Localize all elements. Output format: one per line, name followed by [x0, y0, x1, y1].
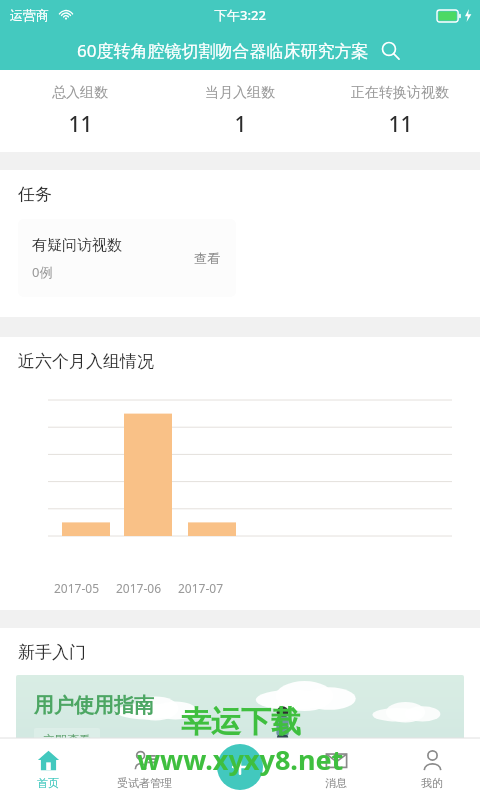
button[interactable]: 首页 [0, 738, 96, 800]
button[interactable]: Search [377, 37, 403, 63]
staticText: 运营商 [10, 7, 49, 23]
staticText: 2017-05 [54, 580, 100, 596]
staticText: 新手入门 [18, 642, 86, 663]
button[interactable]: 立即查看 [43, 732, 91, 747]
staticText: www.xyxy8.net [137, 741, 344, 778]
staticText: 总入组数 [52, 84, 108, 102]
staticText: 1 [234, 110, 247, 139]
button[interactable]: 当月入组数 [160, 84, 320, 139]
staticText: 下午3:22 [214, 6, 266, 24]
staticText: 2017-06 [116, 580, 162, 596]
staticText: 11 [388, 110, 413, 139]
button[interactable]: 有疑问访视数 [18, 219, 236, 297]
staticText: 用户使用指南 [34, 693, 154, 718]
staticText: 消息 [325, 776, 347, 790]
staticText: 11 [68, 110, 93, 139]
staticText: 0例 [32, 263, 53, 281]
staticText: 正在转换访视数 [351, 84, 449, 102]
button[interactable]: 我的 [384, 738, 480, 800]
staticText: 有疑问访视数 [32, 236, 122, 255]
staticText: 立即查看 [43, 732, 91, 747]
button[interactable]: 受试者管理 [96, 738, 192, 800]
staticText: 幸运下载 [181, 703, 301, 741]
staticText: 受试者管理 [117, 776, 172, 790]
staticText: 首页 [37, 776, 59, 790]
button[interactable]: 消息 [288, 738, 384, 800]
staticText: 查看 [194, 250, 220, 266]
staticText: 我的 [421, 776, 443, 790]
button[interactable]: Add [217, 744, 263, 790]
staticText: 当月入组数 [205, 84, 275, 102]
staticText: 近六个月入组情况 [18, 351, 154, 372]
button[interactable]: 用户使用指南 [16, 675, 464, 793]
staticText: 60度转角腔镜切割吻合器临床研究方案 [77, 39, 369, 62]
button[interactable]: 正在转换访视数 [320, 84, 480, 139]
staticText: 任务 [18, 184, 52, 205]
button[interactable]: 总入组数 [0, 84, 160, 139]
staticText: 2017-07 [178, 580, 224, 596]
